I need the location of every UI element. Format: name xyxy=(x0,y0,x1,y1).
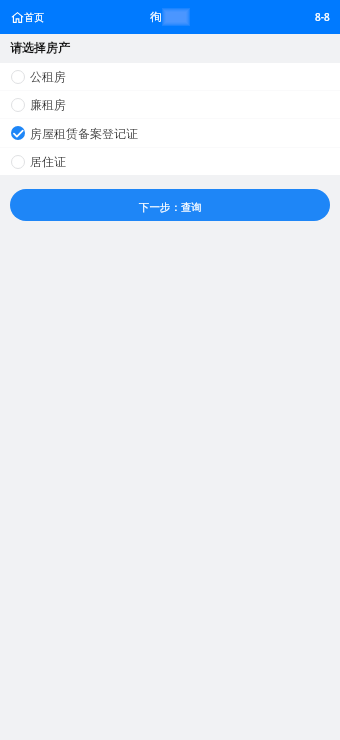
button[interactable]: 廉租房 xyxy=(0,91,340,118)
button[interactable]: 8-8 xyxy=(305,4,340,30)
staticText: 居住证 xyxy=(30,154,66,169)
button[interactable]: 公租房 xyxy=(0,63,340,90)
staticText: 请选择房产 xyxy=(10,40,70,55)
staticText: 下一步：查询 xyxy=(139,201,202,214)
other: Home xyxy=(12,12,23,23)
button[interactable]: Home xyxy=(0,11,50,24)
staticText: 廉租房 xyxy=(30,97,66,112)
staticText: 8-8 xyxy=(315,10,330,24)
staticText: 房屋租赁备案登记证 xyxy=(30,126,138,141)
staticText: 首页 xyxy=(24,11,44,24)
button[interactable]: 房屋租赁备案登记证 xyxy=(0,119,340,147)
button[interactable]: 下一步：查询 xyxy=(10,189,330,221)
staticText: 徇 xyxy=(150,10,162,24)
staticText: 公租房 xyxy=(30,69,66,84)
button[interactable]: 居住证 xyxy=(0,148,340,175)
